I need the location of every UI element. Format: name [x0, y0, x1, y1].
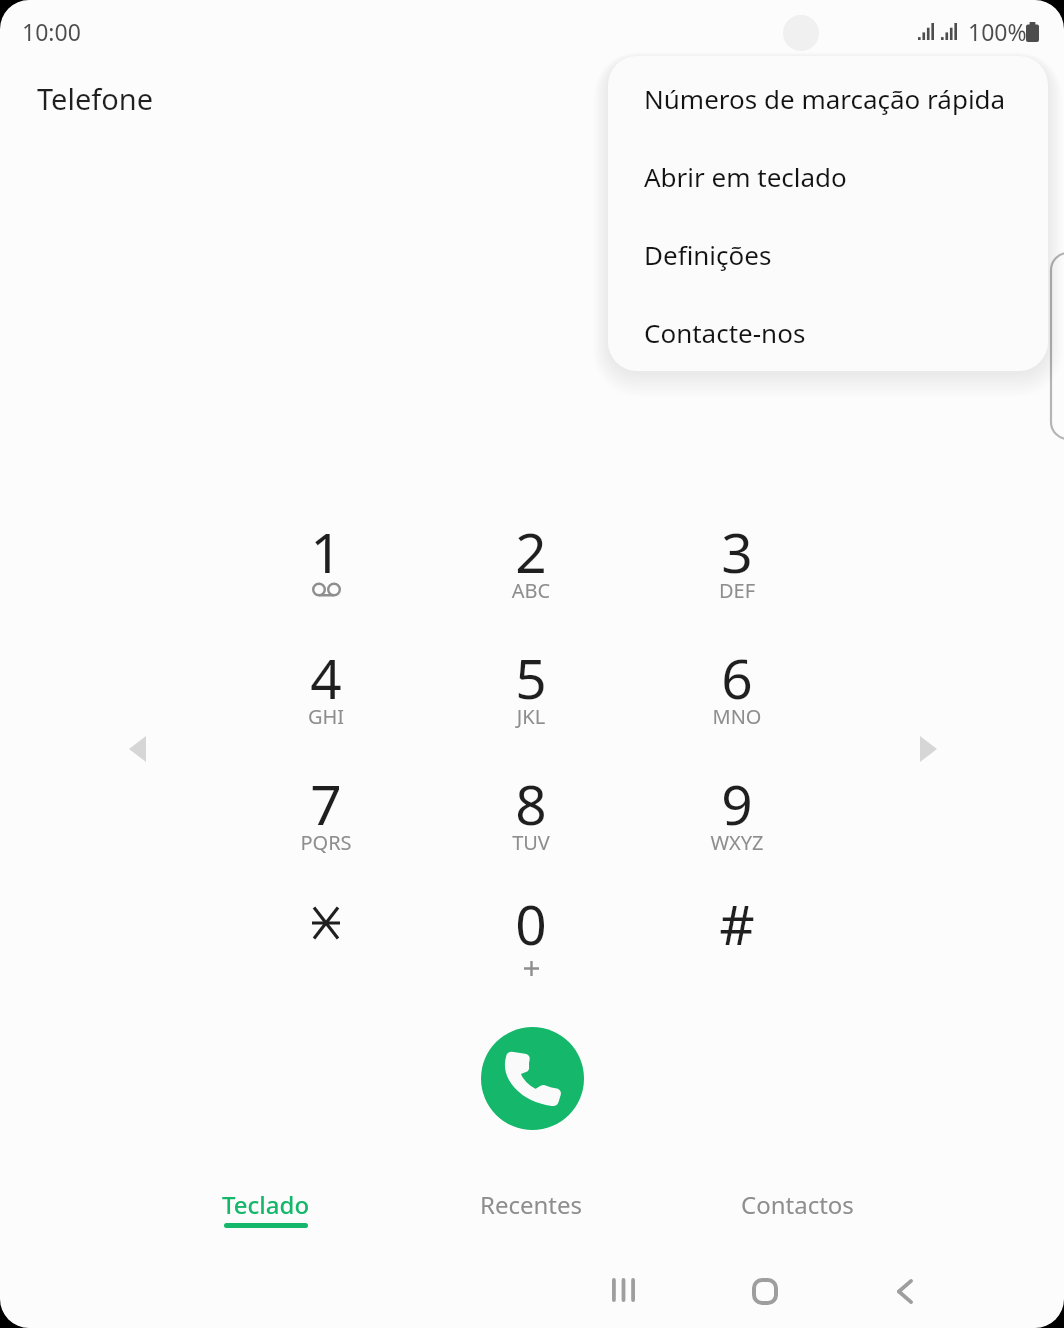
staticText: #	[659, 886, 815, 961]
staticText: 2	[453, 514, 609, 589]
button[interactable]: #	[659, 878, 815, 990]
button[interactable]: 0	[453, 878, 609, 990]
button[interactable]: 6	[659, 632, 815, 744]
staticText: 9	[659, 766, 815, 841]
button[interactable]: Recentes	[431, 1188, 631, 1238]
button[interactable]: Números de marcação rápida	[608, 59, 1048, 137]
staticText: 1	[248, 514, 404, 589]
staticText: Números de marcação rápida	[644, 81, 1006, 116]
button[interactable]: 2	[453, 506, 609, 618]
button[interactable]: Previous page	[108, 720, 166, 778]
staticText: DEF	[659, 577, 815, 604]
button[interactable]: Contactos	[697, 1188, 897, 1238]
staticText: 6	[659, 640, 815, 715]
staticText: 0	[453, 886, 609, 961]
staticText: 4	[248, 640, 404, 715]
button[interactable]: Contacte-nos	[608, 293, 1048, 371]
staticText: 10:00	[22, 16, 81, 47]
button[interactable]: 1	[248, 506, 404, 618]
button[interactable]: Definições	[608, 215, 1048, 293]
staticText: Contactos	[741, 1188, 854, 1221]
button[interactable]: Call	[481, 1027, 584, 1130]
staticText: Contacte-nos	[644, 315, 806, 350]
button[interactable]: Next page	[899, 720, 957, 778]
staticText: TUV	[453, 829, 609, 856]
button[interactable]: 7	[248, 758, 404, 870]
staticText: Telefone	[37, 79, 154, 118]
staticText: Teclado	[222, 1188, 310, 1221]
staticText: 100%	[968, 16, 1027, 47]
staticText: 8	[453, 766, 609, 841]
button[interactable]: Back	[877, 1263, 933, 1319]
staticText: 7	[248, 766, 404, 841]
staticText: ABC	[453, 577, 609, 604]
button[interactable]: 3	[659, 506, 815, 618]
button[interactable]: 8	[453, 758, 609, 870]
staticText: Abrir em teclado	[644, 159, 847, 194]
staticText: GHI	[248, 703, 404, 730]
staticText: Definições	[644, 237, 772, 272]
button[interactable]: Recent apps	[595, 1262, 651, 1318]
staticText: JKL	[453, 703, 609, 730]
button[interactable]: Abrir em teclado	[608, 137, 1048, 215]
button[interactable]: Teclado	[166, 1188, 366, 1238]
button[interactable]: Home	[737, 1263, 793, 1319]
staticText: WXYZ	[659, 829, 815, 856]
staticText: 5	[453, 640, 609, 715]
staticText: MNO	[659, 703, 815, 730]
button[interactable]	[248, 878, 404, 990]
button[interactable]: 5	[453, 632, 609, 744]
staticText: 3	[659, 514, 815, 589]
staticText: PQRS	[248, 829, 404, 856]
button[interactable]: 9	[659, 758, 815, 870]
staticText: Recentes	[480, 1188, 583, 1221]
button[interactable]: 4	[248, 632, 404, 744]
